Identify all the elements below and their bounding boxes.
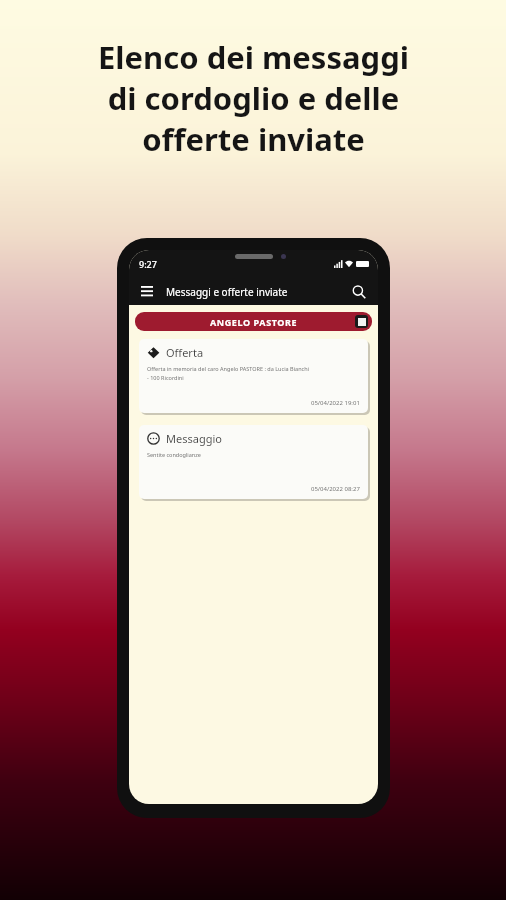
staticText: 05/04/2022 19:01: [311, 399, 360, 407]
staticText: Offerta in memoria del caro Angelo PASTO…: [147, 365, 310, 382]
staticText: Messaggio: [166, 431, 222, 446]
button[interactable]: Offerta: [139, 339, 368, 413]
button[interactable]: Menu: [137, 282, 157, 302]
staticText: 9:27: [139, 258, 157, 270]
staticText: Messaggi e offerte inviate: [166, 285, 288, 299]
button[interactable]: Dettagli: [355, 315, 368, 328]
staticText: Offerta: [166, 345, 204, 360]
staticText: Sentite condoglianze: [147, 451, 201, 458]
button[interactable]: ANGELO PASTORE: [135, 312, 372, 331]
staticText: Elenco dei messaggi di cordoglio e delle…: [98, 36, 409, 160]
button[interactable]: Search: [348, 281, 370, 303]
button[interactable]: Messaggio: [139, 425, 368, 499]
staticText: 05/04/2022 08:27: [311, 485, 360, 493]
staticText: ANGELO PASTORE: [210, 316, 298, 328]
